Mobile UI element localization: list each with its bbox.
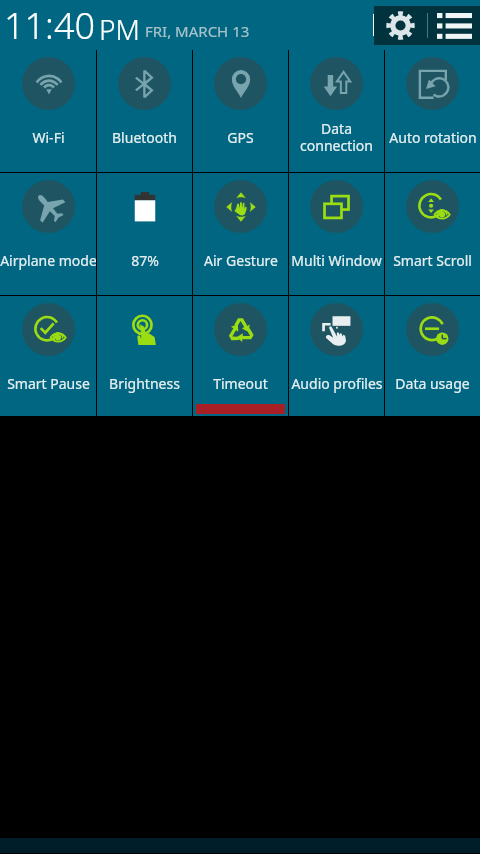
staticText: Airplane mode: [0, 251, 96, 270]
button[interactable]: Brightness: [97, 296, 192, 416]
staticText: Wi-Fi: [32, 128, 65, 147]
button[interactable]: 87%: [97, 173, 192, 295]
staticText: Timeout: [213, 374, 268, 393]
button[interactable]: Air Gesture: [193, 173, 288, 295]
button[interactable]: GPS: [193, 50, 288, 172]
button[interactable]: Bluetooth: [97, 50, 192, 172]
button[interactable]: Show all settings: [428, 6, 480, 45]
button[interactable]: Data usage: [385, 296, 480, 416]
staticText: 87%: [131, 251, 159, 270]
staticText: FRI, MARCH 13: [145, 21, 250, 41]
staticText: Brightness: [109, 374, 180, 393]
staticText: Air Gesture: [204, 251, 278, 270]
button[interactable]: Timeout: [193, 296, 288, 416]
staticText: GPS: [227, 128, 254, 147]
button[interactable]: Wi-Fi: [0, 50, 96, 172]
staticText: Data usage: [395, 374, 470, 393]
staticText: Bluetooth: [112, 128, 177, 147]
button[interactable]: Smart Pause: [0, 296, 96, 416]
button[interactable]: Auto rotation: [385, 50, 480, 172]
button[interactable]: Airplane mode: [0, 173, 96, 295]
button[interactable]: Settings: [374, 6, 427, 45]
button[interactable]: Audio profiles: [289, 296, 384, 416]
button[interactable]: Smart Scroll: [385, 173, 480, 295]
staticText: Smart Scroll: [393, 251, 472, 270]
button[interactable]: Multi Window: [289, 173, 384, 295]
staticText: Multi Window: [291, 251, 382, 270]
staticText: 11:40: [4, 1, 96, 50]
staticText: Smart Pause: [7, 374, 90, 393]
staticText: PM: [99, 10, 140, 48]
staticText: Audio profiles: [291, 374, 383, 393]
staticText: Auto rotation: [389, 128, 477, 147]
staticText: Data connection: [300, 119, 373, 155]
button[interactable]: Data connection: [289, 50, 384, 172]
